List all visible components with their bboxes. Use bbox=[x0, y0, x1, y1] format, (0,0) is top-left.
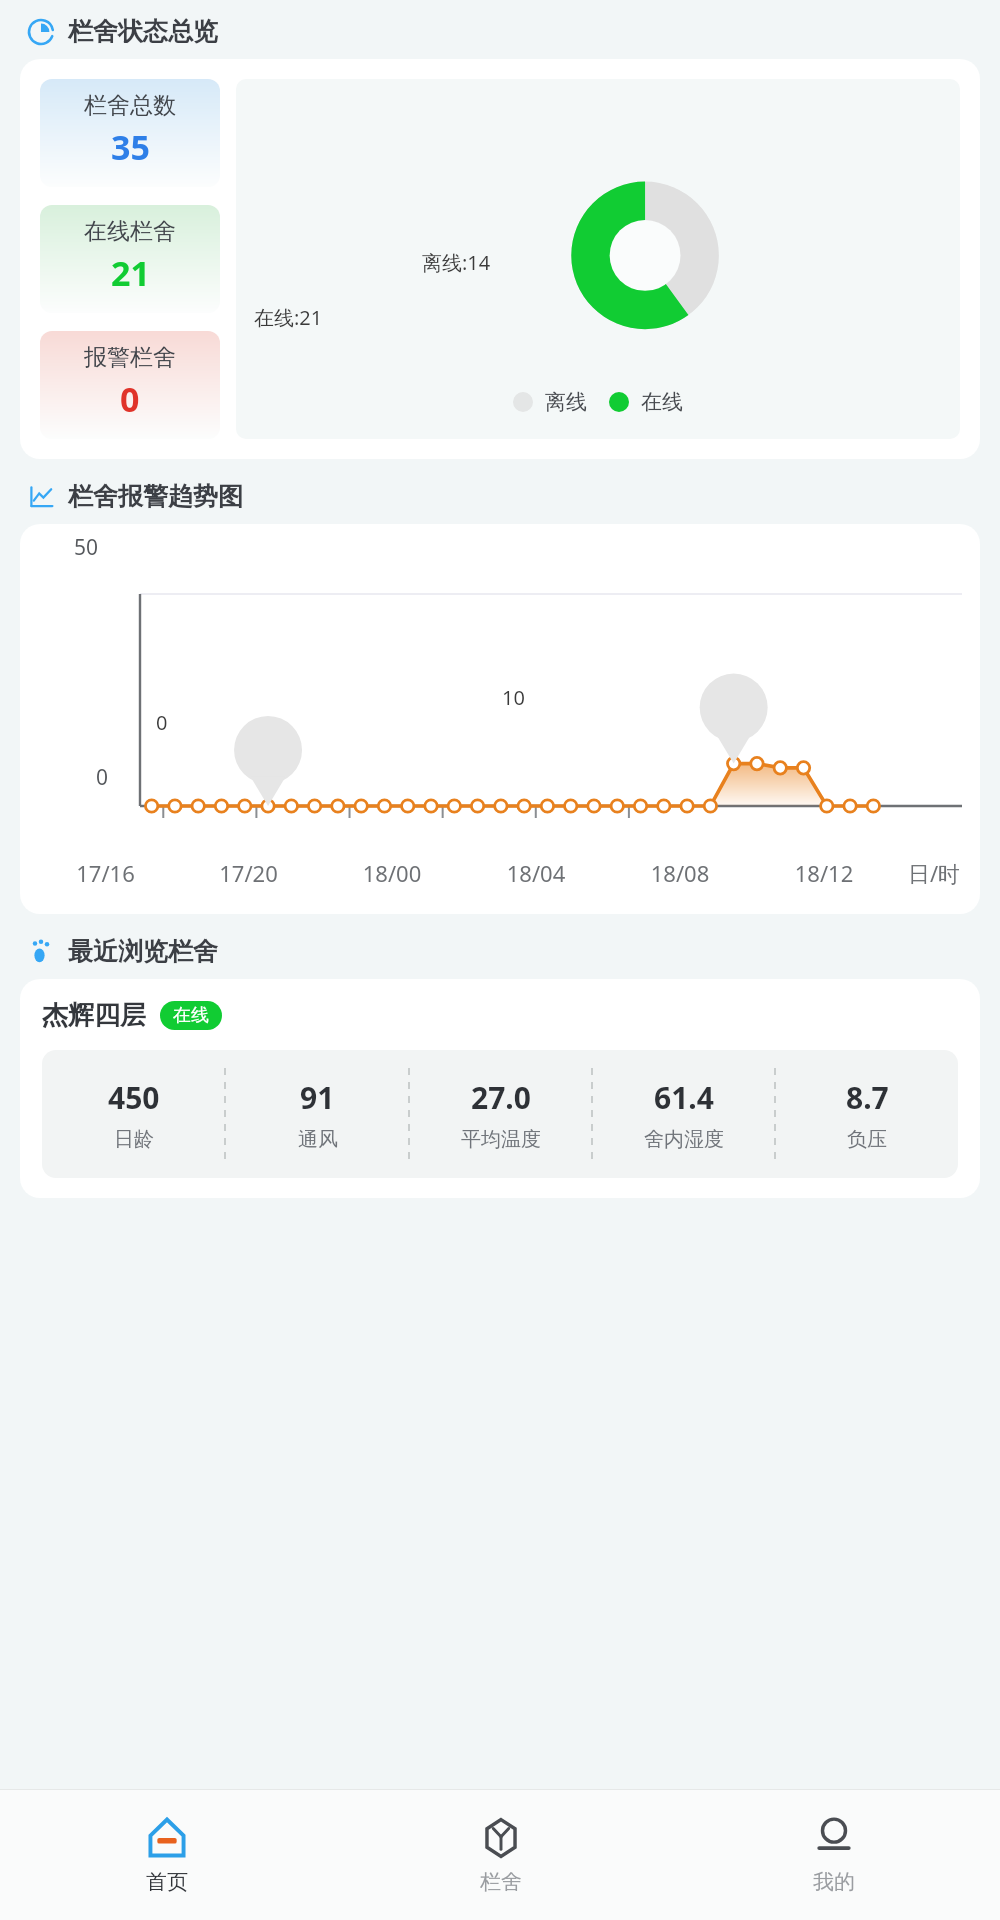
button[interactable]: 在线栏舍 bbox=[40, 205, 220, 313]
staticText: 日/时 bbox=[896, 858, 972, 888]
staticText: 18/08 bbox=[608, 858, 752, 888]
staticText: 17/20 bbox=[177, 858, 320, 888]
staticText: 通风 bbox=[298, 1127, 338, 1152]
staticText: 栏舍总数 bbox=[84, 91, 176, 120]
staticText: 杰辉四层 bbox=[42, 999, 146, 1032]
staticText: 21 bbox=[111, 250, 150, 296]
button[interactable]: 首页 bbox=[0, 1790, 334, 1920]
button[interactable]: 我的 bbox=[667, 1790, 1000, 1920]
staticText: 91 bbox=[300, 1077, 335, 1118]
staticText: 50 bbox=[74, 533, 99, 562]
staticText: 栏舍报警趋势图 bbox=[68, 481, 243, 512]
staticText: 平均温度 bbox=[461, 1127, 541, 1152]
staticText: 离线:14 bbox=[422, 249, 491, 276]
staticText: 450 bbox=[108, 1077, 160, 1118]
staticText: 35 bbox=[111, 124, 150, 170]
staticText: 舍内湿度 bbox=[644, 1127, 724, 1152]
button[interactable]: 栏舍 bbox=[334, 1790, 667, 1920]
staticText: 10 bbox=[502, 684, 525, 711]
staticText: 27.0 bbox=[471, 1077, 531, 1118]
staticText: 17/16 bbox=[34, 858, 177, 888]
staticText: 在线 bbox=[641, 389, 683, 415]
staticText: 日龄 bbox=[114, 1127, 154, 1152]
staticText: 0 bbox=[156, 709, 168, 736]
button[interactable]: 栏舍总数 bbox=[40, 79, 220, 187]
staticText: 在线 bbox=[173, 1004, 209, 1027]
staticText: 61.4 bbox=[654, 1077, 714, 1118]
staticText: 我的 bbox=[813, 1869, 855, 1895]
staticText: 在线:21 bbox=[254, 304, 323, 331]
staticText: 首页 bbox=[146, 1869, 188, 1895]
staticText: 18/12 bbox=[752, 858, 896, 888]
staticText: 栏舍状态总览 bbox=[68, 16, 218, 47]
staticText: 负压 bbox=[847, 1127, 887, 1152]
staticText: 栏舍 bbox=[480, 1869, 522, 1895]
staticText: 18/00 bbox=[320, 858, 464, 888]
button[interactable]: 杰辉四层 bbox=[20, 979, 980, 1198]
staticText: 0 bbox=[120, 376, 140, 422]
staticText: 离线 bbox=[545, 389, 587, 415]
staticText: 0 bbox=[96, 763, 109, 792]
staticText: 报警栏舍 bbox=[84, 343, 176, 372]
button[interactable]: 报警栏舍 bbox=[40, 331, 220, 439]
staticText: 在线栏舍 bbox=[84, 217, 176, 246]
staticText: 18/04 bbox=[464, 858, 608, 888]
staticText: 最近浏览栏舍 bbox=[68, 936, 218, 967]
staticText: 8.7 bbox=[846, 1077, 889, 1118]
